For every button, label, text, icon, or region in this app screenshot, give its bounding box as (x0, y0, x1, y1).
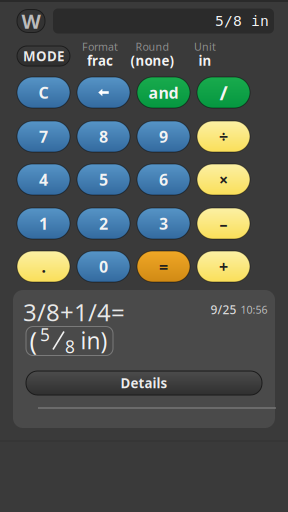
staticText: in) (80, 325, 107, 355)
button[interactable]: C (17, 77, 70, 108)
button[interactable]: and (137, 77, 190, 108)
button[interactable]: 1 (17, 208, 70, 239)
staticText: 6 (159, 169, 168, 190)
button[interactable]: Backspace (77, 77, 130, 108)
staticText: 1 (39, 213, 48, 234)
staticText: = (159, 256, 168, 277)
staticText: 3 (159, 213, 168, 234)
staticText: (none) (130, 52, 174, 69)
staticText: frac (87, 52, 113, 69)
staticText: W (21, 8, 40, 34)
staticText: 5/8 in (215, 13, 269, 29)
staticText: 2 (99, 213, 108, 234)
button[interactable]: 6 (137, 164, 190, 195)
staticText: × (219, 169, 228, 190)
staticText: / (219, 79, 227, 106)
staticText: 5 (40, 323, 50, 346)
button[interactable]: ÷ (197, 121, 250, 152)
staticText: 8 (99, 126, 108, 147)
staticText: 7 (39, 126, 48, 147)
button[interactable]: Wolfram Alpha (17, 9, 45, 32)
button[interactable]: 2 (77, 208, 130, 239)
staticText: Details (120, 374, 167, 392)
staticText: ( (29, 324, 37, 357)
button[interactable]: 9 (137, 121, 190, 152)
staticText: 9 (159, 126, 168, 147)
staticText: C (38, 82, 48, 103)
button[interactable]: 3 (137, 208, 190, 239)
button[interactable]: 7 (17, 121, 70, 152)
button[interactable]: / (197, 77, 250, 108)
staticText: 8 (65, 335, 75, 358)
button[interactable]: × (197, 164, 250, 195)
staticText: MODE (23, 47, 64, 65)
button[interactable]: Format (71, 38, 129, 68)
staticText: 10:56 (240, 302, 267, 317)
button[interactable]: = (137, 251, 190, 282)
button[interactable]: 5 (77, 164, 130, 195)
staticText: – (219, 213, 227, 234)
staticText: Format (82, 39, 118, 54)
staticText: ÷ (219, 126, 228, 147)
staticText: . (41, 256, 45, 277)
button[interactable]: – (197, 208, 250, 239)
button[interactable]: 8 (77, 121, 130, 152)
staticText: and (148, 82, 178, 103)
staticText: in (198, 52, 211, 69)
button[interactable]: 0 (77, 251, 130, 282)
button[interactable]: 4 (17, 164, 70, 195)
staticText: 0 (99, 256, 108, 277)
button[interactable]: Details (26, 371, 262, 395)
button[interactable]: . (17, 251, 70, 282)
staticText: 5 (99, 169, 108, 190)
staticText: + (219, 256, 228, 277)
staticText: 9/25 (210, 301, 236, 317)
button[interactable]: MODE (17, 46, 70, 66)
staticText: 4 (39, 169, 48, 190)
button[interactable]: Input field (53, 8, 274, 33)
button[interactable]: Unit (176, 38, 234, 68)
button[interactable]: Round (123, 38, 181, 68)
staticText: Unit (194, 39, 216, 54)
staticText: 3/8+1/4= (23, 296, 125, 328)
staticText: Round (135, 39, 169, 54)
button[interactable]: + (197, 251, 250, 282)
